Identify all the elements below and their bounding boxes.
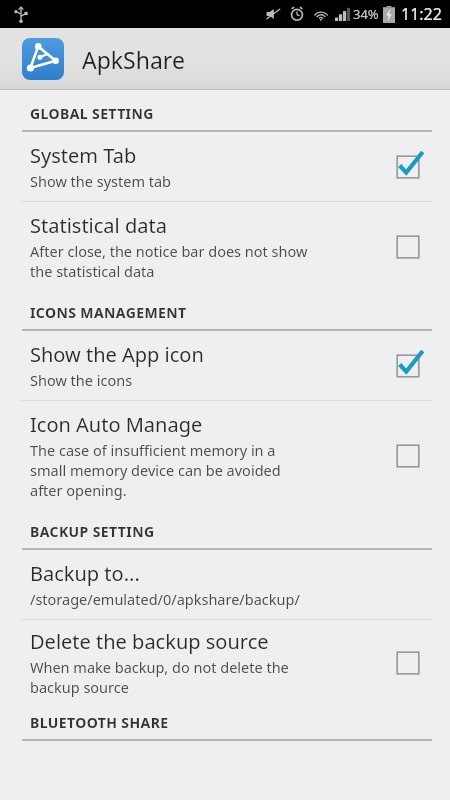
- button[interactable]: Show the App icon: [0, 331, 450, 400]
- staticText: 34%: [353, 5, 379, 23]
- staticText: When make backup, do not delete the back…: [30, 657, 289, 697]
- staticText: The case of insufficient memory in a sma…: [30, 440, 281, 500]
- staticText: BACKUP SETTING: [30, 522, 155, 541]
- button[interactable]: Delete the backup source: [0, 620, 450, 705]
- staticText: Delete the backup source: [30, 628, 269, 655]
- staticText: GLOBAL SETTING: [30, 104, 154, 123]
- staticText: Show the App icon: [30, 341, 204, 368]
- button[interactable]: Icon Auto Manage: [0, 401, 450, 510]
- staticText: /storage/emulated/0/apkshare/backup/: [30, 589, 300, 609]
- other: ApkShare app icon: [22, 38, 64, 80]
- button[interactable]: Icon Auto Manage unchecked: [386, 434, 430, 478]
- staticText: ICONS MANAGEMENT: [30, 303, 187, 322]
- staticText: Show the system tab: [30, 171, 172, 191]
- staticText: After close, the notice bar does not sho…: [30, 241, 308, 281]
- staticText: Statistical data: [30, 212, 167, 239]
- staticText: BLUETOOTH SHARE: [30, 713, 169, 732]
- staticText: Icon Auto Manage: [30, 411, 203, 438]
- button[interactable]: Backup to...: [0, 550, 450, 619]
- staticText: System Tab: [30, 142, 137, 169]
- button[interactable]: Delete the backup source unchecked: [386, 641, 430, 685]
- button[interactable]: Statistical data: [0, 202, 450, 291]
- staticText: Show the icons: [30, 370, 133, 390]
- button[interactable]: System Tab: [0, 132, 450, 201]
- staticText: ApkShare: [82, 44, 185, 75]
- button[interactable]: System Tab checked: [386, 145, 430, 189]
- button[interactable]: Statistical data unchecked: [386, 225, 430, 269]
- button[interactable]: Show the App icon checked: [386, 344, 430, 388]
- staticText: 11:22: [401, 3, 442, 25]
- staticText: Backup to...: [30, 560, 140, 587]
